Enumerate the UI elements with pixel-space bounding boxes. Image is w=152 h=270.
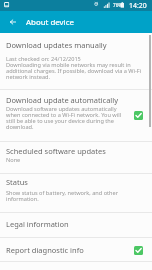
button[interactable]: Download update automatically bbox=[0, 90, 152, 141]
staticText: Status bbox=[6, 178, 28, 187]
staticText: Legal information bbox=[6, 220, 69, 229]
button[interactable]: Navigate up bbox=[0, 11, 25, 33]
button[interactable]: Download updates manually bbox=[0, 33, 152, 89]
staticText: Show status of battery, network, and oth… bbox=[6, 190, 142, 202]
button[interactable]: Status bbox=[0, 174, 152, 212]
staticText: Download update automatically bbox=[6, 96, 119, 105]
staticText: Downloading via mobile networks may resu… bbox=[6, 62, 142, 80]
staticText: Download updates manually bbox=[6, 41, 107, 50]
button[interactable]: Download update automatically bbox=[134, 111, 143, 120]
staticText: Download software updates automatically … bbox=[6, 106, 126, 130]
staticText: Report diagnostic info bbox=[6, 246, 134, 255]
button[interactable]: Report diagnostic info bbox=[0, 238, 152, 261]
staticText: 14:20 bbox=[129, 1, 147, 10]
button[interactable]: Legal information bbox=[0, 213, 152, 237]
staticText: Last checked on: 24/12/2015 bbox=[6, 56, 81, 62]
staticText: 76% bbox=[113, 2, 123, 8]
button[interactable]: Scheduled software updates bbox=[0, 142, 152, 173]
staticText: None bbox=[6, 157, 21, 163]
staticText: Scheduled software updates bbox=[6, 147, 106, 156]
staticText: About device bbox=[26, 17, 74, 28]
